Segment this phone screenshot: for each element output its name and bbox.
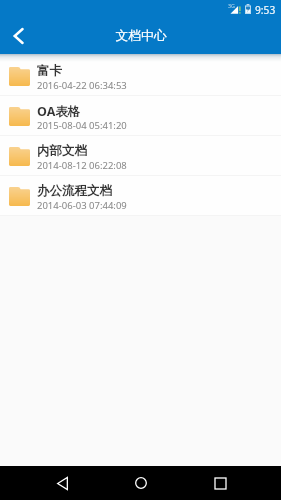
staticText: 2014-06-03 07:44:09 xyxy=(37,199,127,212)
staticText: 2016-04-22 06:34:53 xyxy=(37,79,127,92)
staticText: OA表格 xyxy=(37,103,81,120)
staticText: 富卡 xyxy=(37,63,62,79)
staticText: 内部文档 xyxy=(37,143,87,159)
button[interactable]: Back xyxy=(42,466,82,500)
staticText: 2014-08-12 06:22:08 xyxy=(37,159,127,172)
button[interactable]: Home xyxy=(121,466,161,500)
button[interactable]: Recent apps xyxy=(200,466,240,500)
button[interactable]: 办公流程文档 xyxy=(0,176,281,216)
staticText: 9:53 xyxy=(255,3,276,17)
staticText: 办公流程文档 xyxy=(37,183,112,199)
staticText: 3G xyxy=(228,2,235,9)
button[interactable]: Back xyxy=(0,17,37,55)
button[interactable]: 富卡 xyxy=(0,56,281,96)
button[interactable]: 内部文档 xyxy=(0,136,281,176)
button[interactable]: OA表格 xyxy=(0,96,281,136)
staticText: 2015-08-04 05:41:20 xyxy=(37,119,127,132)
staticText: 文档中心 xyxy=(115,28,167,44)
